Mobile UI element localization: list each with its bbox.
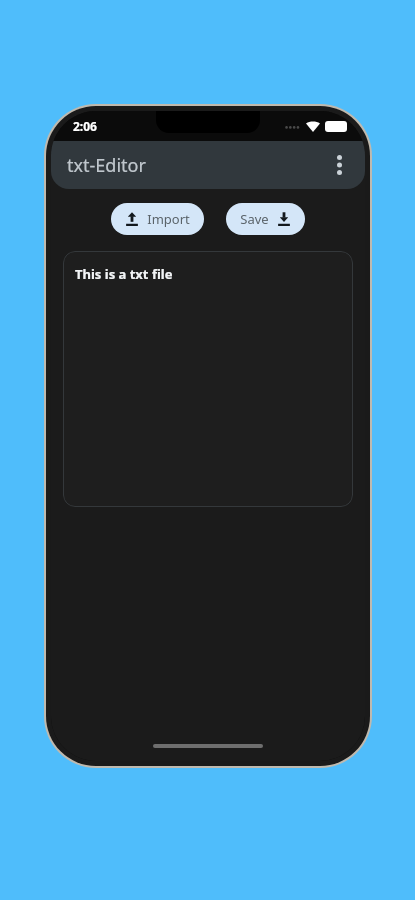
staticText: This is a txt file [75, 265, 173, 283]
staticText: 2:06 [73, 118, 97, 134]
button[interactable]: Import [111, 203, 204, 235]
button[interactable]: This is a txt file [63, 251, 353, 507]
button[interactable]: txt-Editor [51, 141, 365, 189]
staticText: Import [147, 210, 190, 228]
button[interactable]: More options [321, 147, 357, 183]
button[interactable]: Save [226, 203, 305, 235]
staticText: Save [240, 210, 269, 228]
staticText: txt-Editor [67, 153, 146, 178]
